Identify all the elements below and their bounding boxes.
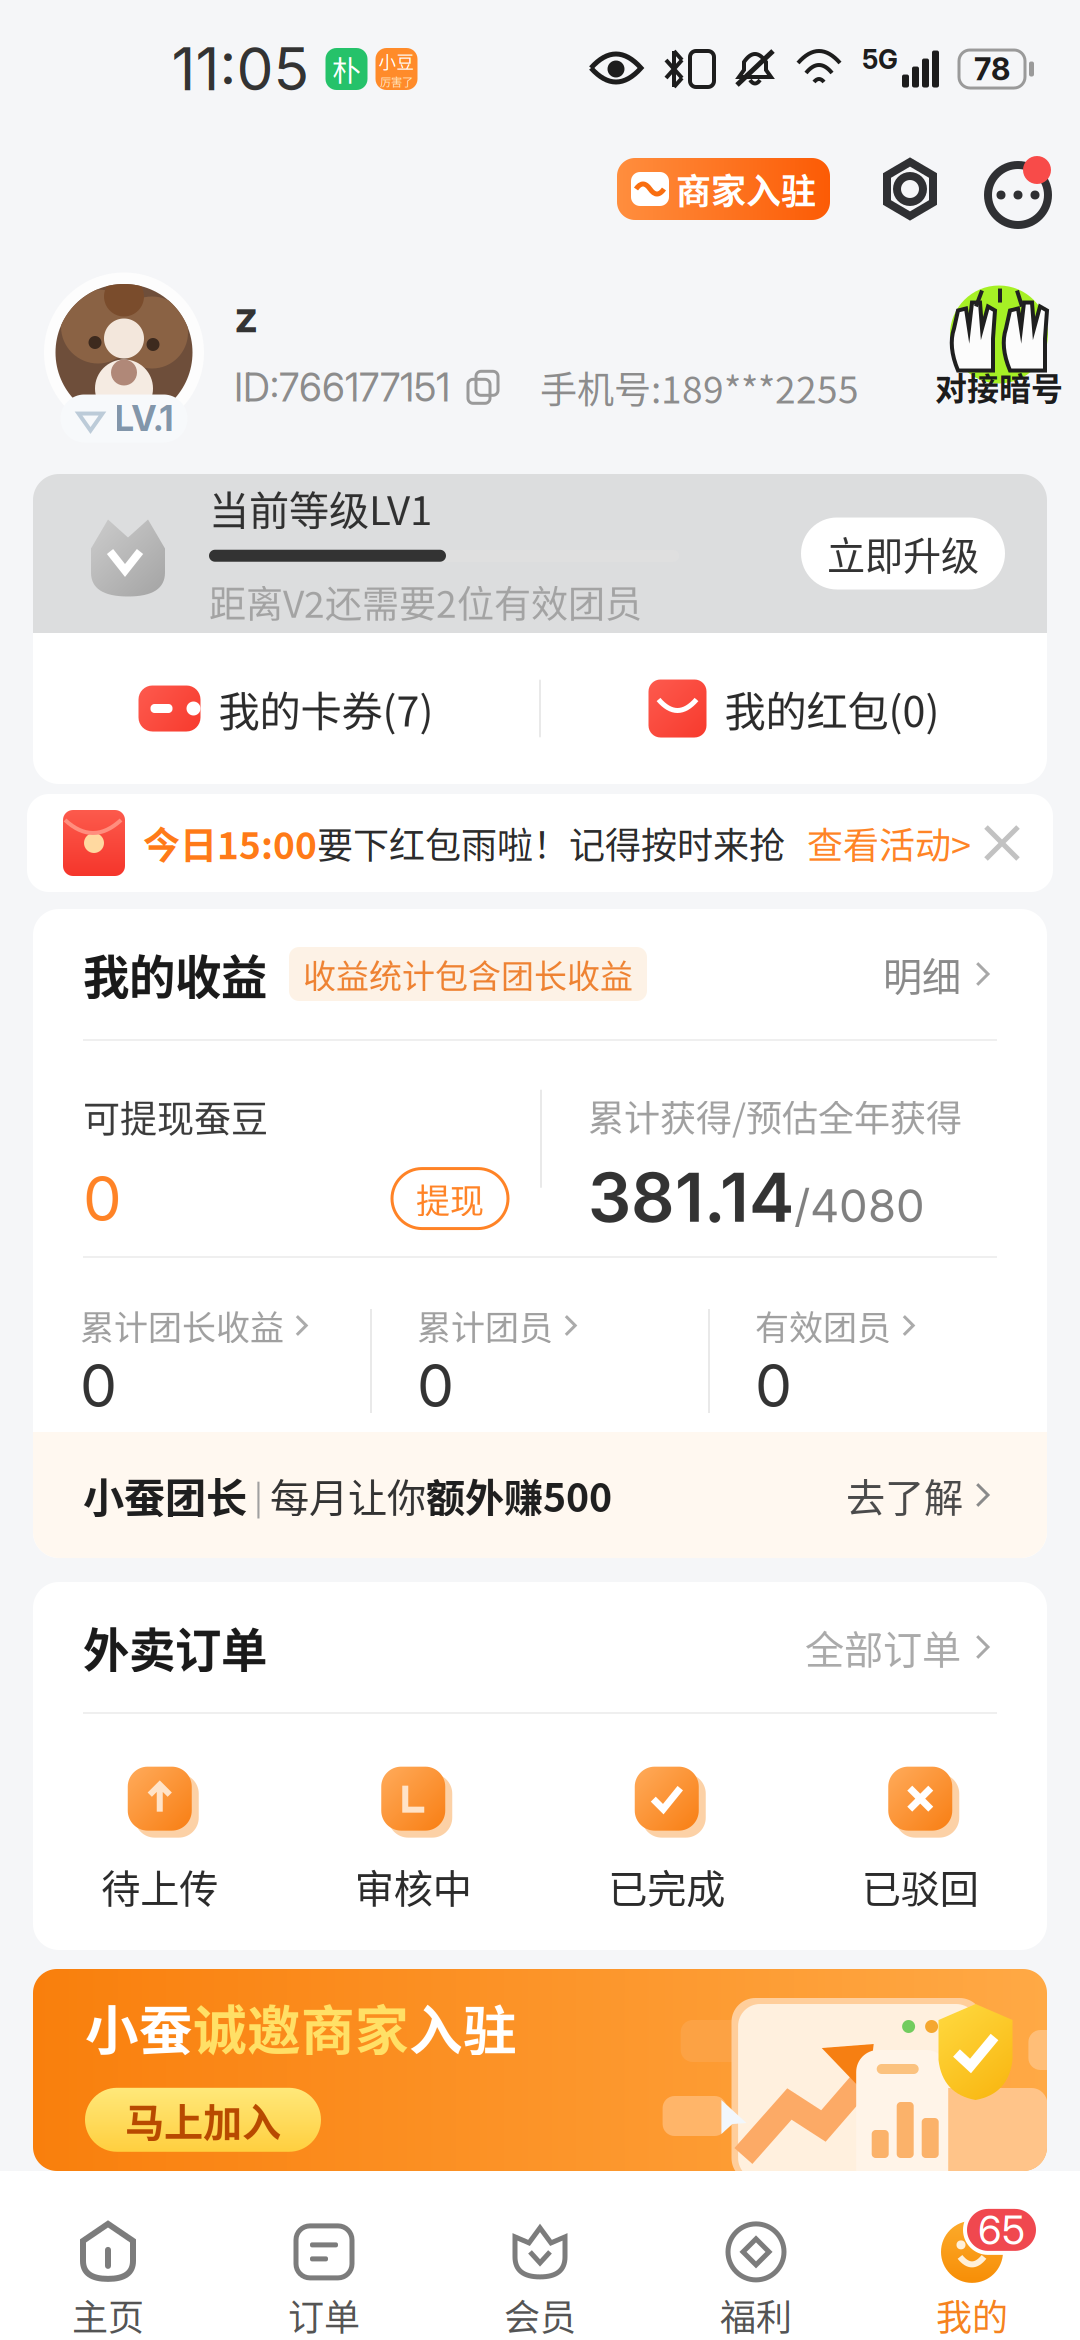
staticText: 主页 bbox=[72, 2289, 144, 2340]
button[interactable]: 累计团员 bbox=[372, 1301, 708, 1421]
button[interactable]: 待上传 bbox=[33, 1760, 286, 1914]
staticText: 商家 bbox=[301, 1988, 409, 2066]
staticText: | bbox=[247, 1471, 270, 1519]
button[interactable]: 主页 bbox=[0, 2171, 216, 2340]
staticText: 全部订单 bbox=[805, 1619, 961, 1675]
staticText: 0 bbox=[80, 1350, 117, 1421]
staticText: 我的卡券(7) bbox=[218, 679, 433, 738]
button[interactable]: 立即升级 bbox=[801, 517, 1005, 589]
staticText: 会员 bbox=[504, 2289, 576, 2340]
staticText: 0 bbox=[755, 1350, 792, 1421]
button[interactable]: Close bbox=[971, 822, 1053, 864]
staticText: 待上传 bbox=[101, 1858, 218, 1914]
button[interactable]: 小蚕 bbox=[33, 1969, 1047, 2171]
staticText: 外卖订单 bbox=[83, 1613, 267, 1680]
staticText: 我的收益 bbox=[83, 940, 267, 1007]
button[interactable]: 累计团长收益 bbox=[80, 1301, 370, 1421]
button[interactable]: Messages bbox=[948, 151, 1054, 227]
staticText: 我的红包(0) bbox=[724, 679, 939, 738]
button[interactable]: 我的卡券(7) bbox=[33, 633, 539, 784]
staticText: 去了解 bbox=[846, 1467, 963, 1523]
button[interactable]: 订单 bbox=[216, 2171, 432, 2340]
staticText: 诚邀 bbox=[193, 1988, 301, 2066]
staticText: 今日15:00 bbox=[143, 816, 317, 870]
staticText: 已驳回 bbox=[862, 1858, 979, 1914]
staticText: 马上加入 bbox=[125, 2091, 281, 2148]
staticText: 381.14 bbox=[588, 1156, 794, 1238]
staticText: LV.1 bbox=[114, 397, 173, 439]
staticText: 累计获得/预估全年获得 bbox=[588, 1090, 962, 1142]
staticText: 额外赚500 bbox=[426, 1467, 612, 1523]
button[interactable]: 提现 bbox=[392, 1169, 508, 1229]
staticText: 查看活动> bbox=[807, 817, 971, 869]
staticText: 累计团长收益 bbox=[80, 1301, 284, 1350]
staticText: 福利 bbox=[720, 2289, 792, 2340]
staticText: 已完成 bbox=[608, 1858, 725, 1914]
staticText: 订单 bbox=[288, 2289, 360, 2340]
staticText: 立即升级 bbox=[827, 526, 979, 581]
staticText: 明细 bbox=[883, 946, 961, 1002]
button[interactable]: 查看活动> bbox=[785, 817, 971, 869]
staticText: 小蚕团长 bbox=[83, 1465, 247, 1525]
staticText: 审核中 bbox=[355, 1858, 472, 1914]
staticText: 对接暗号 bbox=[935, 363, 1063, 410]
staticText: 78 bbox=[974, 50, 1010, 87]
staticText: /4080 bbox=[794, 1178, 925, 1233]
staticText: 要下红包雨啦！记得按时来抢 bbox=[317, 817, 785, 869]
staticText: 收益统计包含团长收益 bbox=[303, 950, 633, 998]
button[interactable]: 有效团员 bbox=[710, 1301, 1000, 1421]
staticText: z bbox=[234, 291, 258, 342]
button[interactable]: 已驳回 bbox=[793, 1760, 1047, 1914]
staticText: 我的 bbox=[936, 2289, 1008, 2340]
staticText: 朴 bbox=[332, 48, 361, 90]
staticText: 累计团员 bbox=[417, 1301, 553, 1350]
button[interactable]: 商家入驻 bbox=[617, 158, 830, 220]
staticText: 每月让你 bbox=[270, 1467, 426, 1523]
staticText: 可提现蚕豆 bbox=[83, 1090, 268, 1143]
staticText: 0 bbox=[417, 1350, 454, 1421]
staticText: 5G bbox=[862, 43, 898, 75]
button[interactable]: 福利 bbox=[648, 2171, 864, 2340]
button[interactable]: 明细 bbox=[883, 946, 997, 1002]
button[interactable]: 小蚕团长 bbox=[33, 1432, 1047, 1558]
staticText: 有效团员 bbox=[755, 1301, 891, 1350]
button[interactable]: 会员 bbox=[432, 2171, 648, 2340]
button[interactable]: 审核中 bbox=[286, 1760, 540, 1914]
button[interactable]: 已完成 bbox=[540, 1760, 793, 1914]
staticText: 商家入驻 bbox=[676, 164, 816, 214]
staticText: 0 bbox=[83, 1161, 122, 1236]
staticText: 厉害了 bbox=[380, 73, 413, 90]
staticText: 入驻 bbox=[409, 1988, 517, 2066]
staticText: 小蚕 bbox=[85, 1988, 193, 2066]
staticText: 11:05 bbox=[171, 33, 309, 104]
staticText: 提现 bbox=[416, 1174, 484, 1223]
button[interactable]: 全部订单 bbox=[805, 1619, 997, 1675]
button[interactable]: 我的红包(0) bbox=[541, 633, 1047, 784]
staticText: 手机号:189***2255 bbox=[540, 360, 859, 414]
button[interactable]: Settings bbox=[830, 147, 948, 231]
staticText: 小豆 bbox=[378, 48, 414, 73]
button[interactable]: 65 bbox=[864, 2171, 1080, 2340]
staticText: 当前等级LV1 bbox=[209, 479, 432, 537]
staticText: 距离V2还需要2位有效团员 bbox=[209, 575, 642, 628]
staticText: ID:766177151 bbox=[234, 364, 450, 411]
staticText: 65 bbox=[978, 2206, 1025, 2254]
